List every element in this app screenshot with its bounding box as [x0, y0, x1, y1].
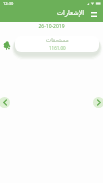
- staticText: مستحقات: [46, 37, 69, 43]
- staticText: 1161.00: [49, 45, 66, 51]
- button[interactable]: Previous: [0, 97, 10, 108]
- staticText: 12:30: [3, 1, 14, 6]
- button[interactable]: Next: [93, 97, 103, 108]
- button[interactable]: مستحقات: [15, 36, 99, 52]
- button[interactable]: Menu: [88, 8, 100, 20]
- staticText: الإشعارات: [57, 9, 85, 17]
- staticText: 26-10-2019: [0, 23, 103, 30]
